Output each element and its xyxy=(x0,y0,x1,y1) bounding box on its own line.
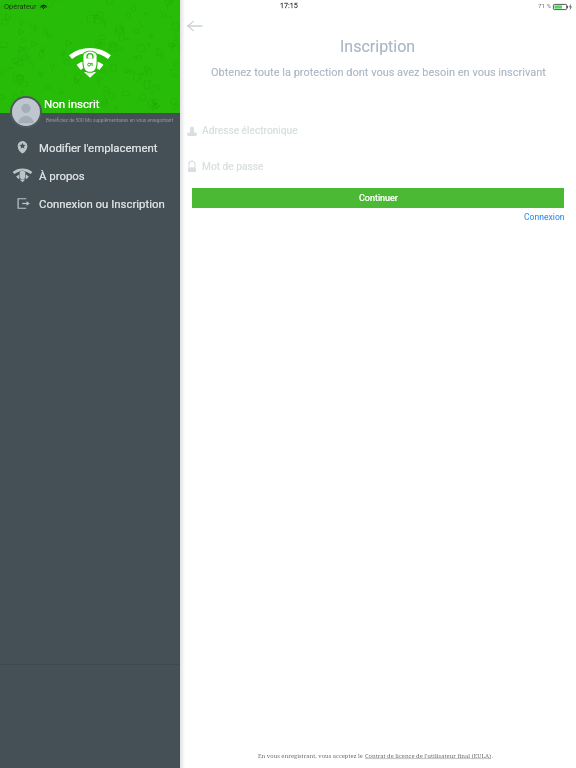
staticText: Connexion xyxy=(524,212,565,222)
staticText: Contrat de licence de l'utilisateur fina… xyxy=(365,752,492,760)
staticText: . xyxy=(492,752,494,760)
staticText: Opérateur xyxy=(4,2,37,11)
staticText: En vous enregistrant, vous acceptez le xyxy=(258,752,365,760)
button[interactable]: Modifier l'emplacement xyxy=(0,133,180,161)
staticText: 17:15 xyxy=(280,1,298,9)
staticText: Continuer xyxy=(359,193,398,204)
staticText: 71 % xyxy=(538,2,552,9)
staticText: Obtenez toute la protection dont vous av… xyxy=(211,66,546,79)
button[interactable]: Back xyxy=(184,15,206,37)
staticText: Non inscrit xyxy=(44,97,100,110)
staticText: Connexion ou Inscription xyxy=(39,197,165,210)
button[interactable]: Connexion xyxy=(524,212,565,222)
staticText: Mot de passe xyxy=(202,161,264,173)
staticText: Bénéficiez de 500 Mo supplémentaires en … xyxy=(46,118,174,124)
staticText: Modifier l'emplacement xyxy=(39,141,158,154)
button[interactable]: Contrat de licence de l'utilisateur fina… xyxy=(365,752,492,760)
staticText: Inscription xyxy=(340,37,416,56)
staticText: À propos xyxy=(39,169,85,182)
staticText: Adresse électronique xyxy=(202,125,298,137)
button[interactable]: Connexion ou Inscription xyxy=(0,189,180,217)
button[interactable]: Continuer xyxy=(192,188,564,208)
button[interactable]: À propos xyxy=(0,161,180,189)
